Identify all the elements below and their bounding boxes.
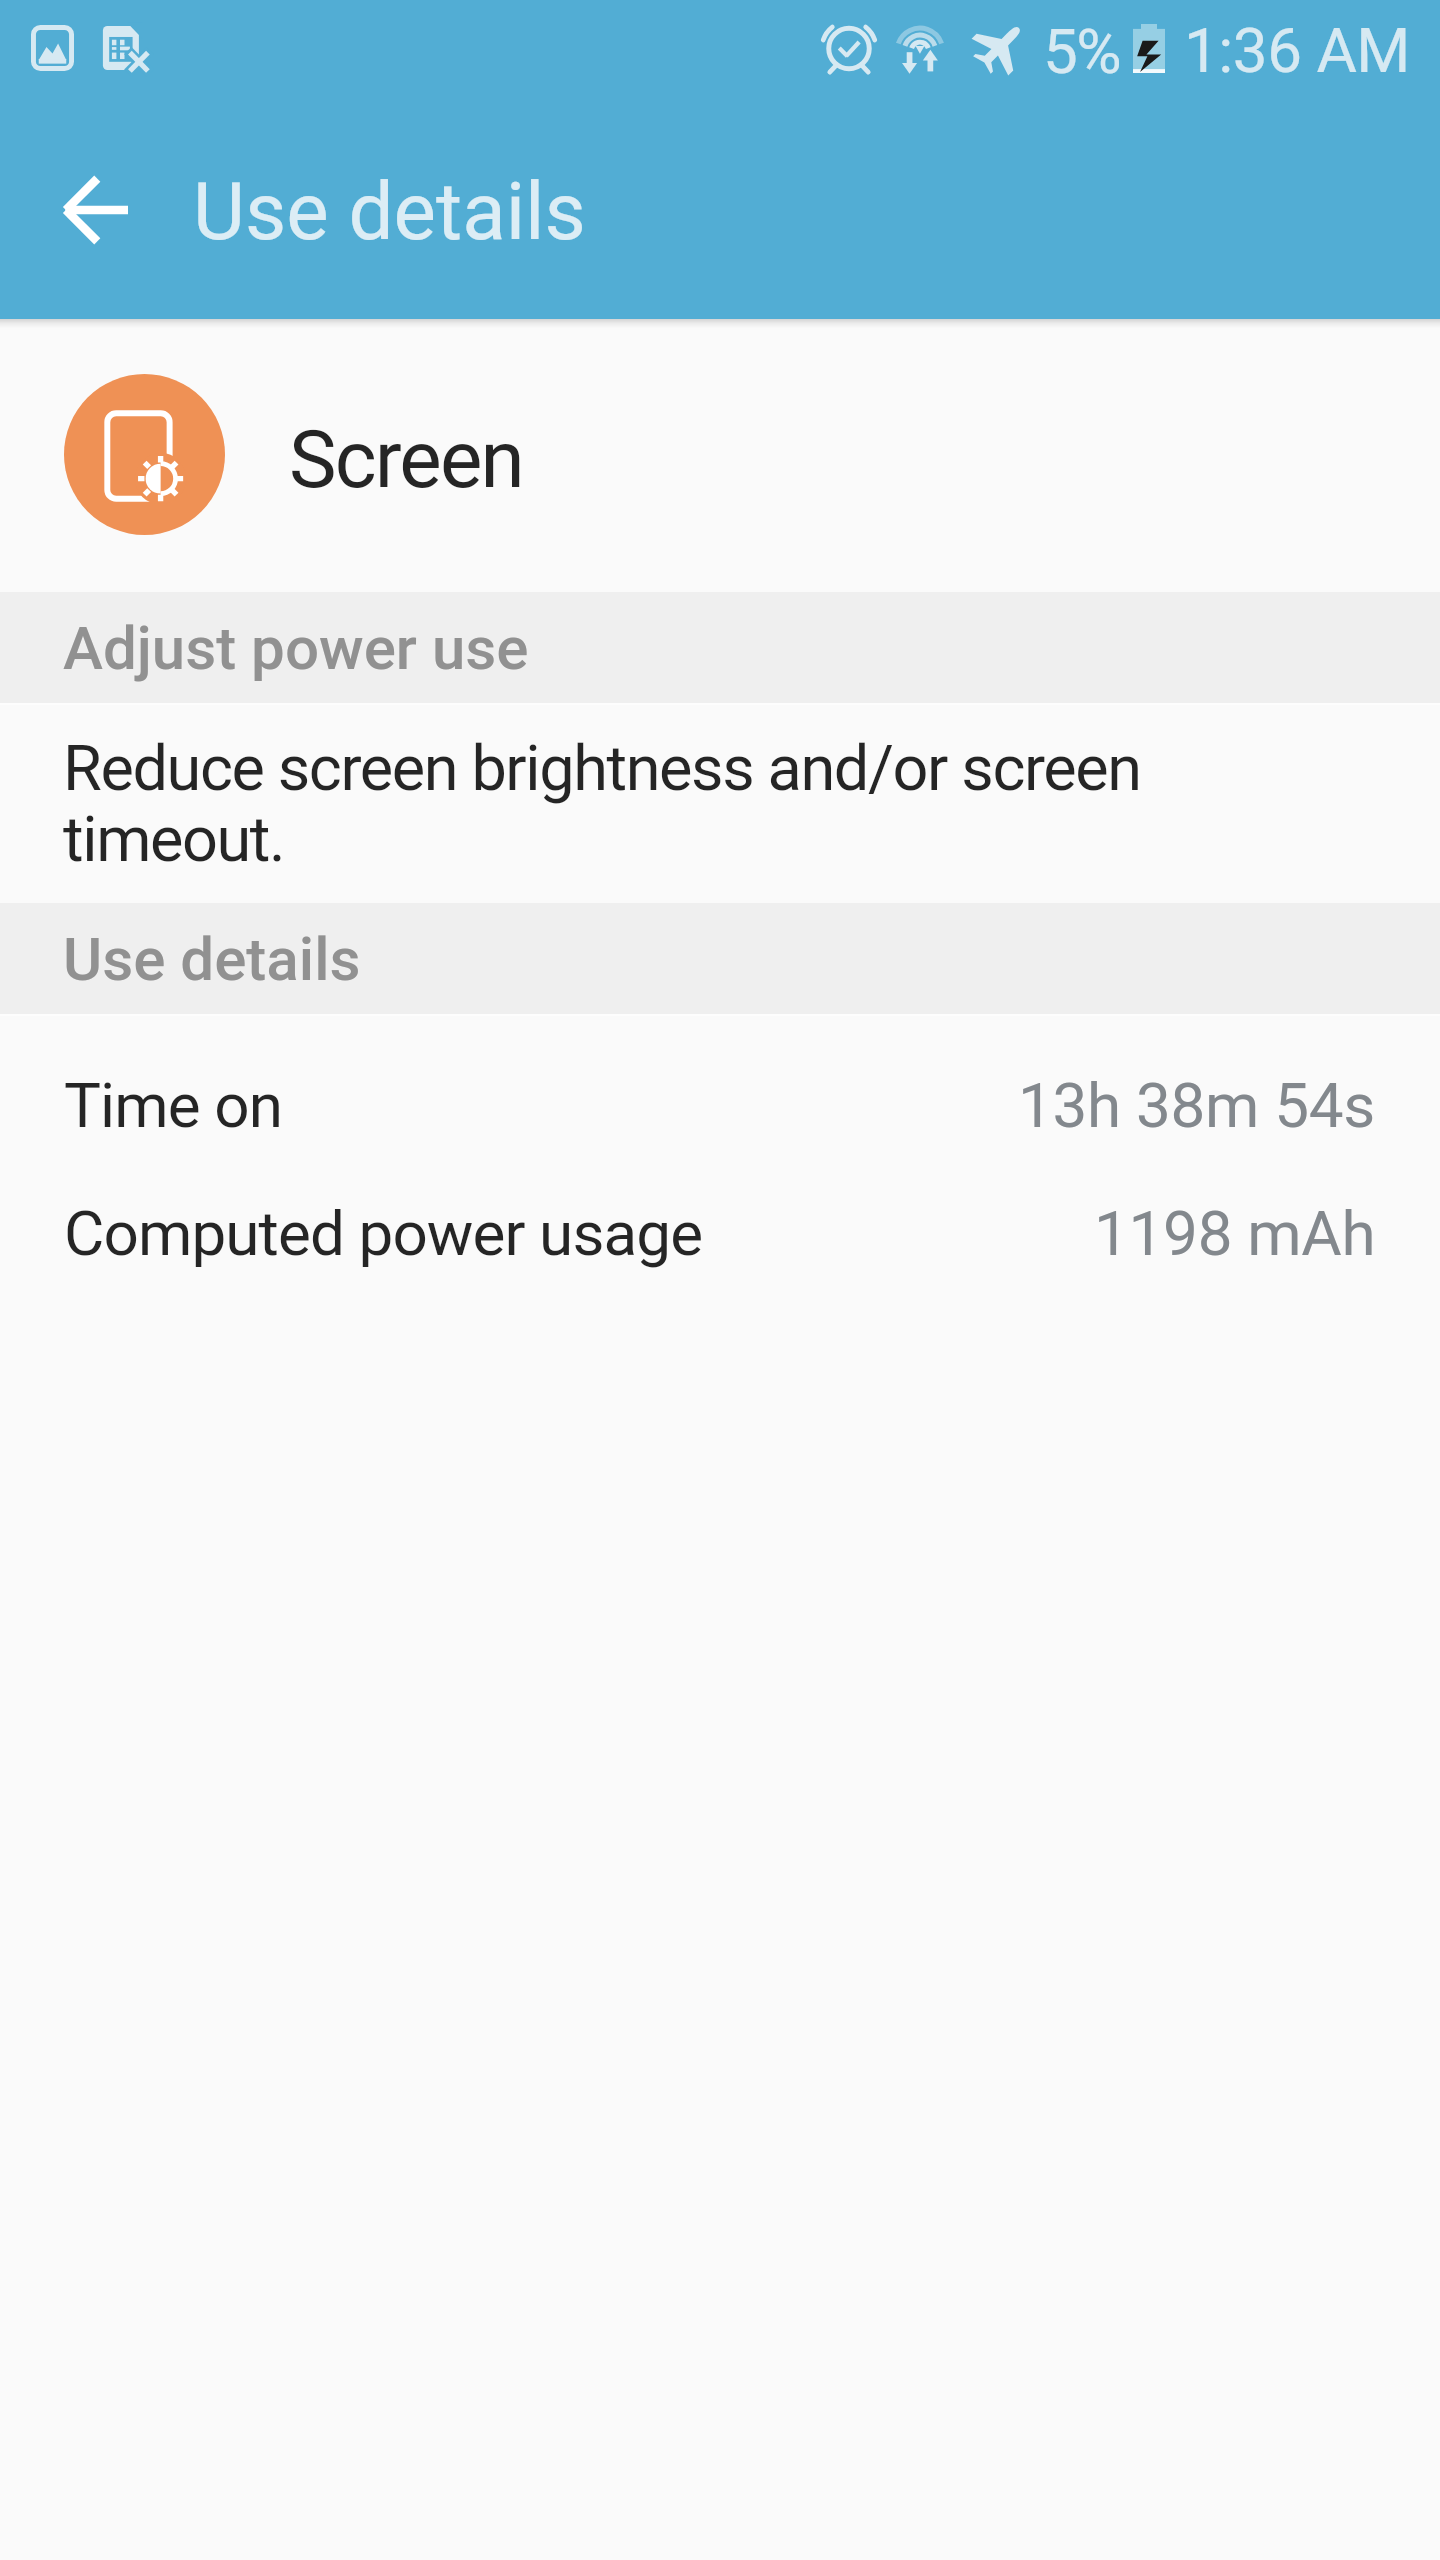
staticText: Screen xyxy=(289,413,523,507)
staticText: Use details xyxy=(193,165,586,259)
staticText: 13h 38m 54s xyxy=(1018,1069,1376,1142)
staticText: Use details xyxy=(63,924,361,994)
button[interactable]: Screen xyxy=(0,319,1440,592)
staticText: Adjust power use xyxy=(63,613,529,683)
staticText: 1:36 AM xyxy=(1184,14,1411,87)
staticText: 1198 mAh xyxy=(1094,1197,1376,1270)
staticText: Computed power usage xyxy=(64,1197,703,1270)
button[interactable]: Computed power usage xyxy=(0,1142,1440,1270)
staticText: 5% xyxy=(1043,15,1121,88)
button[interactable]: Navigate up xyxy=(40,154,152,266)
button[interactable]: Time on xyxy=(0,1014,1440,1142)
staticText: Time on xyxy=(64,1069,282,1142)
staticText: Reduce screen brightness and/or screen t… xyxy=(63,732,1173,877)
